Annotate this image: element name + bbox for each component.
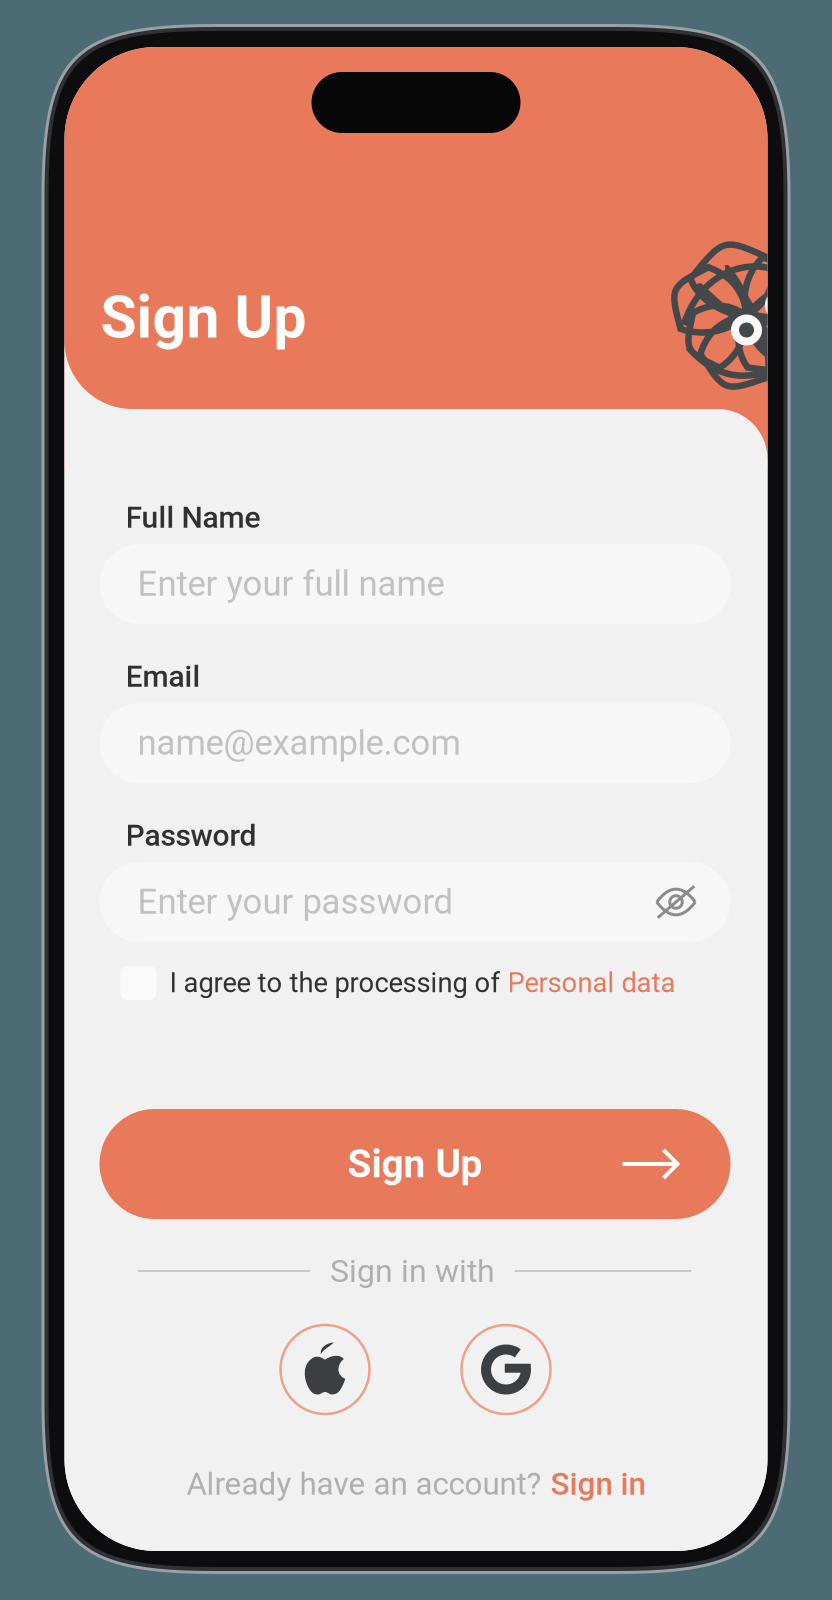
staticText: Email	[125, 659, 200, 694]
staticText: name@example.com	[137, 723, 460, 763]
staticText: Sign in with	[330, 1252, 495, 1290]
button[interactable]: Sign Up	[99, 1109, 730, 1219]
staticText: Enter your password	[137, 882, 453, 922]
staticText: Password	[125, 818, 256, 853]
staticText: Sign in	[550, 1466, 645, 1502]
staticText: Enter your full name	[137, 564, 444, 604]
staticText: Personal data	[507, 967, 675, 999]
staticText: Sign Up	[347, 1141, 482, 1187]
staticText: Sign Up	[100, 283, 306, 352]
staticText: Already have an account?	[186, 1466, 541, 1502]
button[interactable]: Sign up with Apple	[280, 1325, 369, 1414]
button[interactable]: Sign in	[541, 1466, 645, 1502]
staticText: Full Name	[125, 500, 260, 535]
button[interactable]: Personal data	[500, 967, 675, 999]
button[interactable]: Sign up with Google	[461, 1325, 550, 1414]
staticText: I agree to the processing of	[169, 967, 500, 999]
